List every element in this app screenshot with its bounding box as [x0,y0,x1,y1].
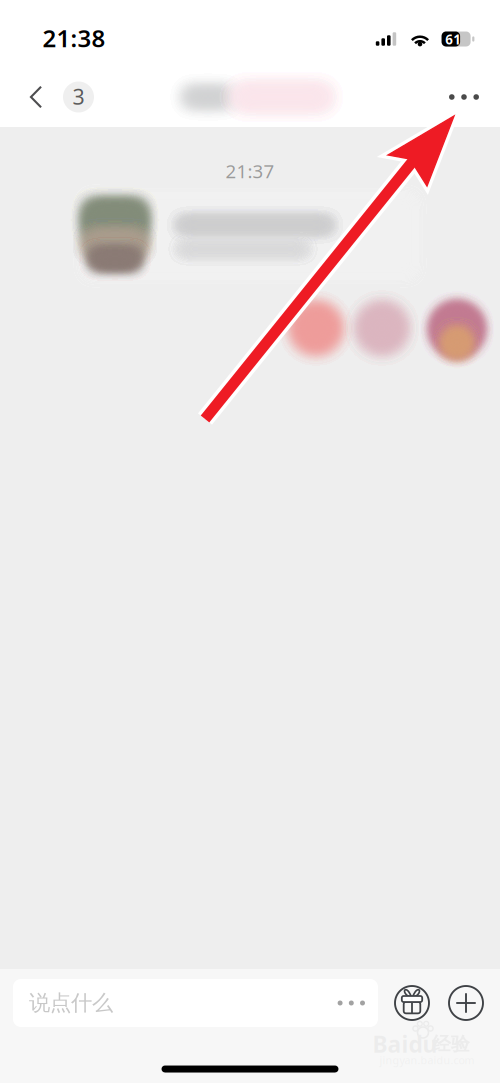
staticText: 3 [72,82,84,111]
staticText: 经验 [432,1032,470,1055]
staticText: 说点什么 [29,990,113,1016]
button[interactable]: Back [16,75,56,119]
staticText: Baidu [372,1029,437,1059]
button[interactable]: 说点什么 [13,979,378,1027]
staticText: 21:37 [225,159,274,183]
button[interactable]: Add [449,986,483,1020]
button[interactable]: Gift [395,986,429,1020]
staticText: 21:38 [42,22,105,54]
button[interactable]: More options [440,74,488,120]
button[interactable]: 3 unread [60,78,97,115]
staticText: 61 [445,30,461,48]
